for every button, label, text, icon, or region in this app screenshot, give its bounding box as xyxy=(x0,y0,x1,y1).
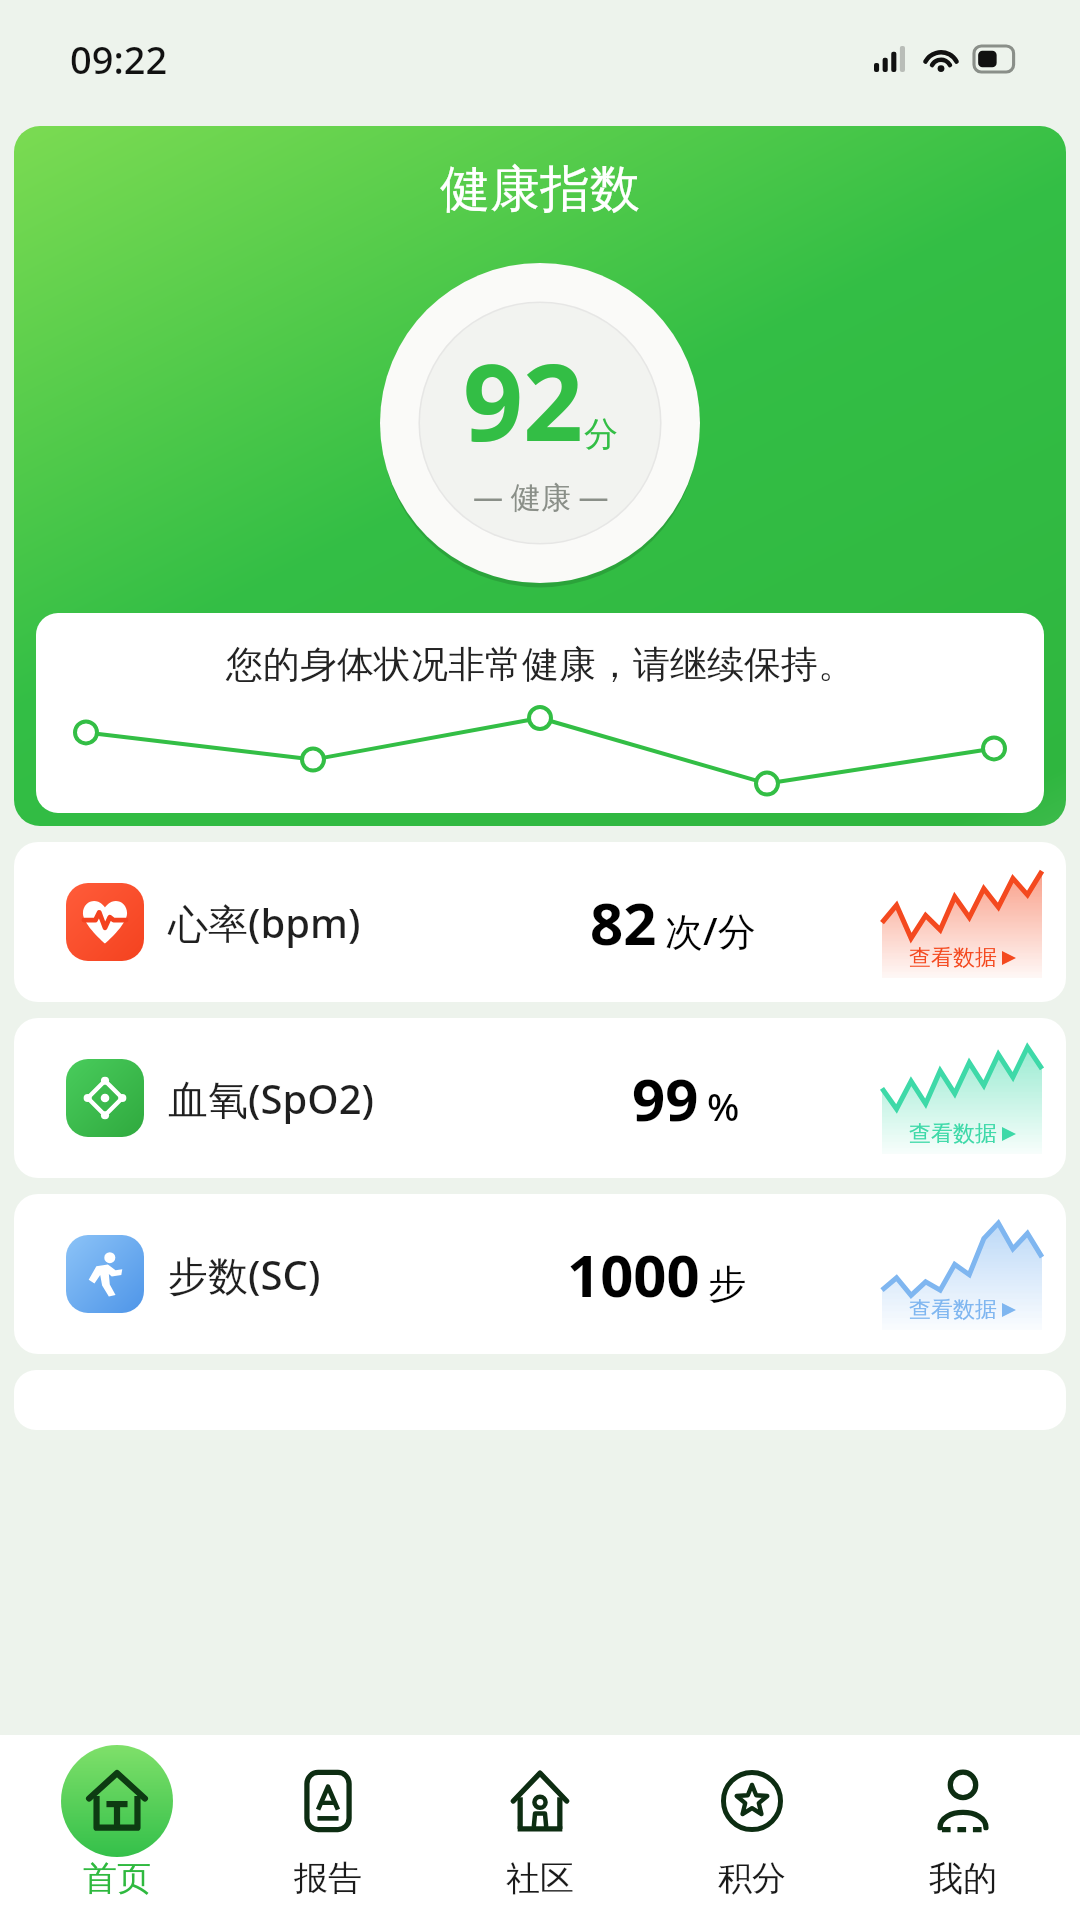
staticText: 次/分 xyxy=(665,904,756,956)
button[interactable]: 心率(bpm) xyxy=(14,842,1066,1002)
staticText: 查看数据 xyxy=(909,1120,997,1148)
staticText: 社区 xyxy=(506,1857,574,1900)
staticText: 心率(bpm) xyxy=(168,895,361,950)
button[interactable]: 查看数据 xyxy=(882,1042,1042,1154)
staticText: 09:22 xyxy=(70,33,168,85)
staticText: 步数(SC) xyxy=(168,1247,321,1302)
staticText: 分 xyxy=(584,413,618,456)
staticText: 99 xyxy=(632,1059,699,1138)
button[interactable]: 首页 xyxy=(22,1745,212,1900)
staticText: 查看数据 xyxy=(909,1296,997,1324)
staticText: 1000 xyxy=(567,1235,700,1314)
button[interactable]: 报告 xyxy=(233,1745,423,1900)
staticText: 血氧(SpO2) xyxy=(168,1071,374,1126)
staticText: 积分 xyxy=(718,1857,786,1900)
button[interactable]: 我的 xyxy=(868,1745,1058,1900)
button[interactable]: 血氧(SpO2) xyxy=(14,1018,1066,1178)
staticText: 健康指数 xyxy=(440,158,640,221)
button[interactable]: 查看数据 xyxy=(882,1218,1042,1330)
button[interactable]: 查看数据 xyxy=(882,866,1042,978)
button[interactable]: 社区 xyxy=(445,1745,635,1900)
staticText: 92 xyxy=(463,329,584,472)
button[interactable]: 积分 xyxy=(657,1745,847,1900)
staticText: 首页 xyxy=(83,1857,151,1900)
staticText: % xyxy=(707,1080,740,1132)
staticText: 查看数据 xyxy=(909,944,997,972)
staticText: 82 xyxy=(590,883,657,962)
staticText: — 健康 — xyxy=(473,476,609,517)
staticText: 我的 xyxy=(929,1857,997,1900)
staticText: 步 xyxy=(708,1260,746,1308)
staticText: 您的身体状况非常健康，请继续保持。 xyxy=(226,641,855,688)
staticText: 报告 xyxy=(294,1857,362,1900)
button[interactable]: 步数(SC) xyxy=(14,1194,1066,1354)
